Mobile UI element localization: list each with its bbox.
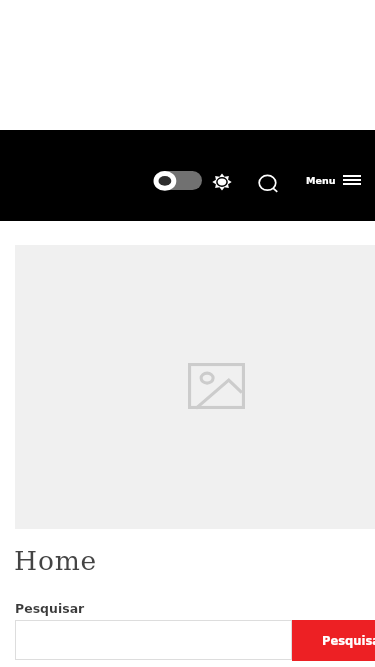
staticText: Pesquisar — [15, 601, 85, 616]
button[interactable]: Toggle dark mode — [154, 170, 202, 191]
staticText: Pesquisar — [322, 634, 375, 647]
staticText: Home — [14, 545, 98, 576]
button[interactable]: Pesquisar — [292, 620, 375, 661]
button[interactable]: Search — [255, 171, 282, 198]
button[interactable]: Search field — [15, 620, 292, 660]
button[interactable]: Menu — [306, 170, 361, 190]
button[interactable]: Brightness — [208, 168, 235, 195]
staticText: Menu — [306, 175, 336, 186]
